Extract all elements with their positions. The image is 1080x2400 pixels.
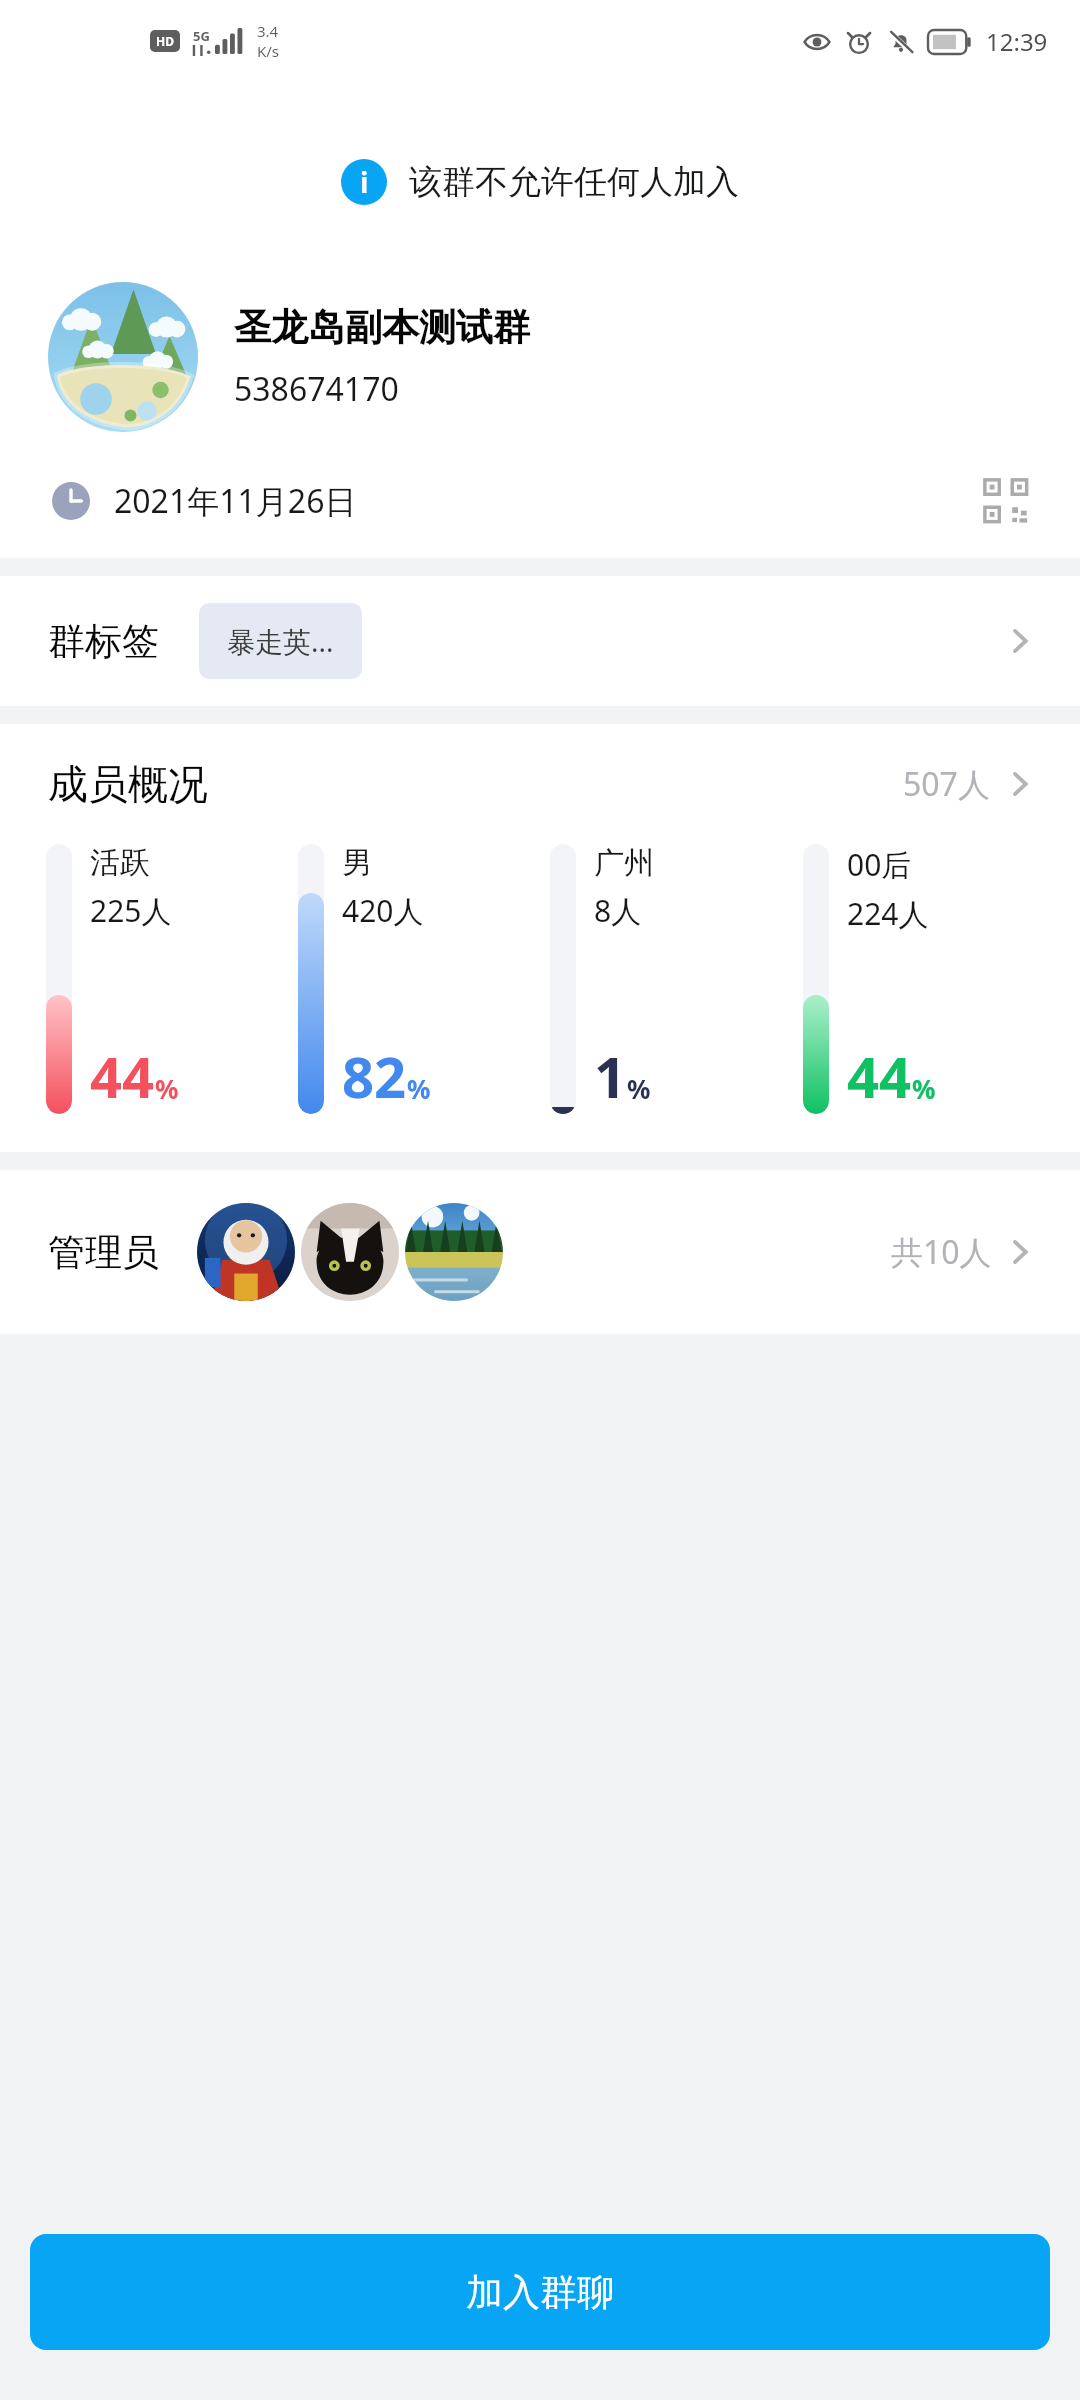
staticText: 管理员 xyxy=(48,1229,159,1276)
staticText: 224人 xyxy=(847,893,929,934)
staticText: 该群不允许任何人加入 xyxy=(409,161,739,203)
staticText: % xyxy=(627,1071,651,1106)
staticText: % xyxy=(155,1071,179,1106)
staticText: 82 xyxy=(342,1038,407,1114)
staticText: 加入群聊 xyxy=(466,2269,614,2316)
staticText: 暴走英... xyxy=(227,622,334,660)
staticText: 活跃 xyxy=(90,844,150,882)
staticText: 00后 xyxy=(847,844,912,885)
button[interactable]: Group QR code xyxy=(978,473,1034,529)
staticText: 44 xyxy=(847,1038,912,1114)
staticText: 男 xyxy=(342,844,372,882)
staticText: 507人 xyxy=(903,762,990,806)
staticText: % xyxy=(407,1071,431,1106)
button[interactable]: i xyxy=(18,98,1062,266)
staticText: 圣龙岛副本测试群 xyxy=(234,304,530,351)
staticText: % xyxy=(912,1071,936,1106)
staticText: 群标签 xyxy=(48,618,159,665)
staticText: 共10人 xyxy=(891,1230,992,1274)
staticText: 44 xyxy=(90,1038,155,1114)
button[interactable]: 群标签 xyxy=(0,576,1080,706)
staticText: 3.4 xyxy=(257,21,279,41)
staticText: 广州 xyxy=(594,844,654,882)
staticText: HD xyxy=(156,33,174,49)
button[interactable]: 成员概况 xyxy=(0,724,1080,844)
button[interactable]: 管理员 xyxy=(0,1170,1080,1334)
staticText: 538674170 xyxy=(234,367,399,411)
staticText: 420人 xyxy=(342,890,424,931)
staticText: 12:39 xyxy=(986,25,1048,58)
staticText: 2021年11月26日 xyxy=(114,479,357,523)
staticText: K/s xyxy=(257,41,280,61)
staticText: i xyxy=(360,163,369,201)
staticText: 1 xyxy=(594,1038,627,1114)
staticText: 225人 xyxy=(90,890,172,931)
staticText: 成员概况 xyxy=(48,759,208,809)
button[interactable]: 加入群聊 xyxy=(30,2234,1050,2350)
staticText: 8人 xyxy=(594,890,642,931)
staticText: 5G xyxy=(193,27,210,45)
